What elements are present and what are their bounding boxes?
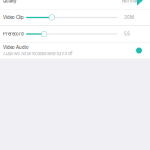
button[interactable]: Video Audio xyxy=(136,47,142,53)
staticText: Quality xyxy=(3,0,16,4)
staticText: Video Clip xyxy=(3,15,24,20)
staticText: Prerecord xyxy=(3,31,24,37)
staticText: Audio will not be recorded when turn it … xyxy=(3,51,72,56)
staticText: Video Audio xyxy=(3,45,29,50)
staticText: 30M xyxy=(124,15,134,20)
staticText: 5S xyxy=(124,31,130,37)
staticText: Normal xyxy=(122,0,137,4)
button[interactable]: Quality xyxy=(0,0,150,9)
